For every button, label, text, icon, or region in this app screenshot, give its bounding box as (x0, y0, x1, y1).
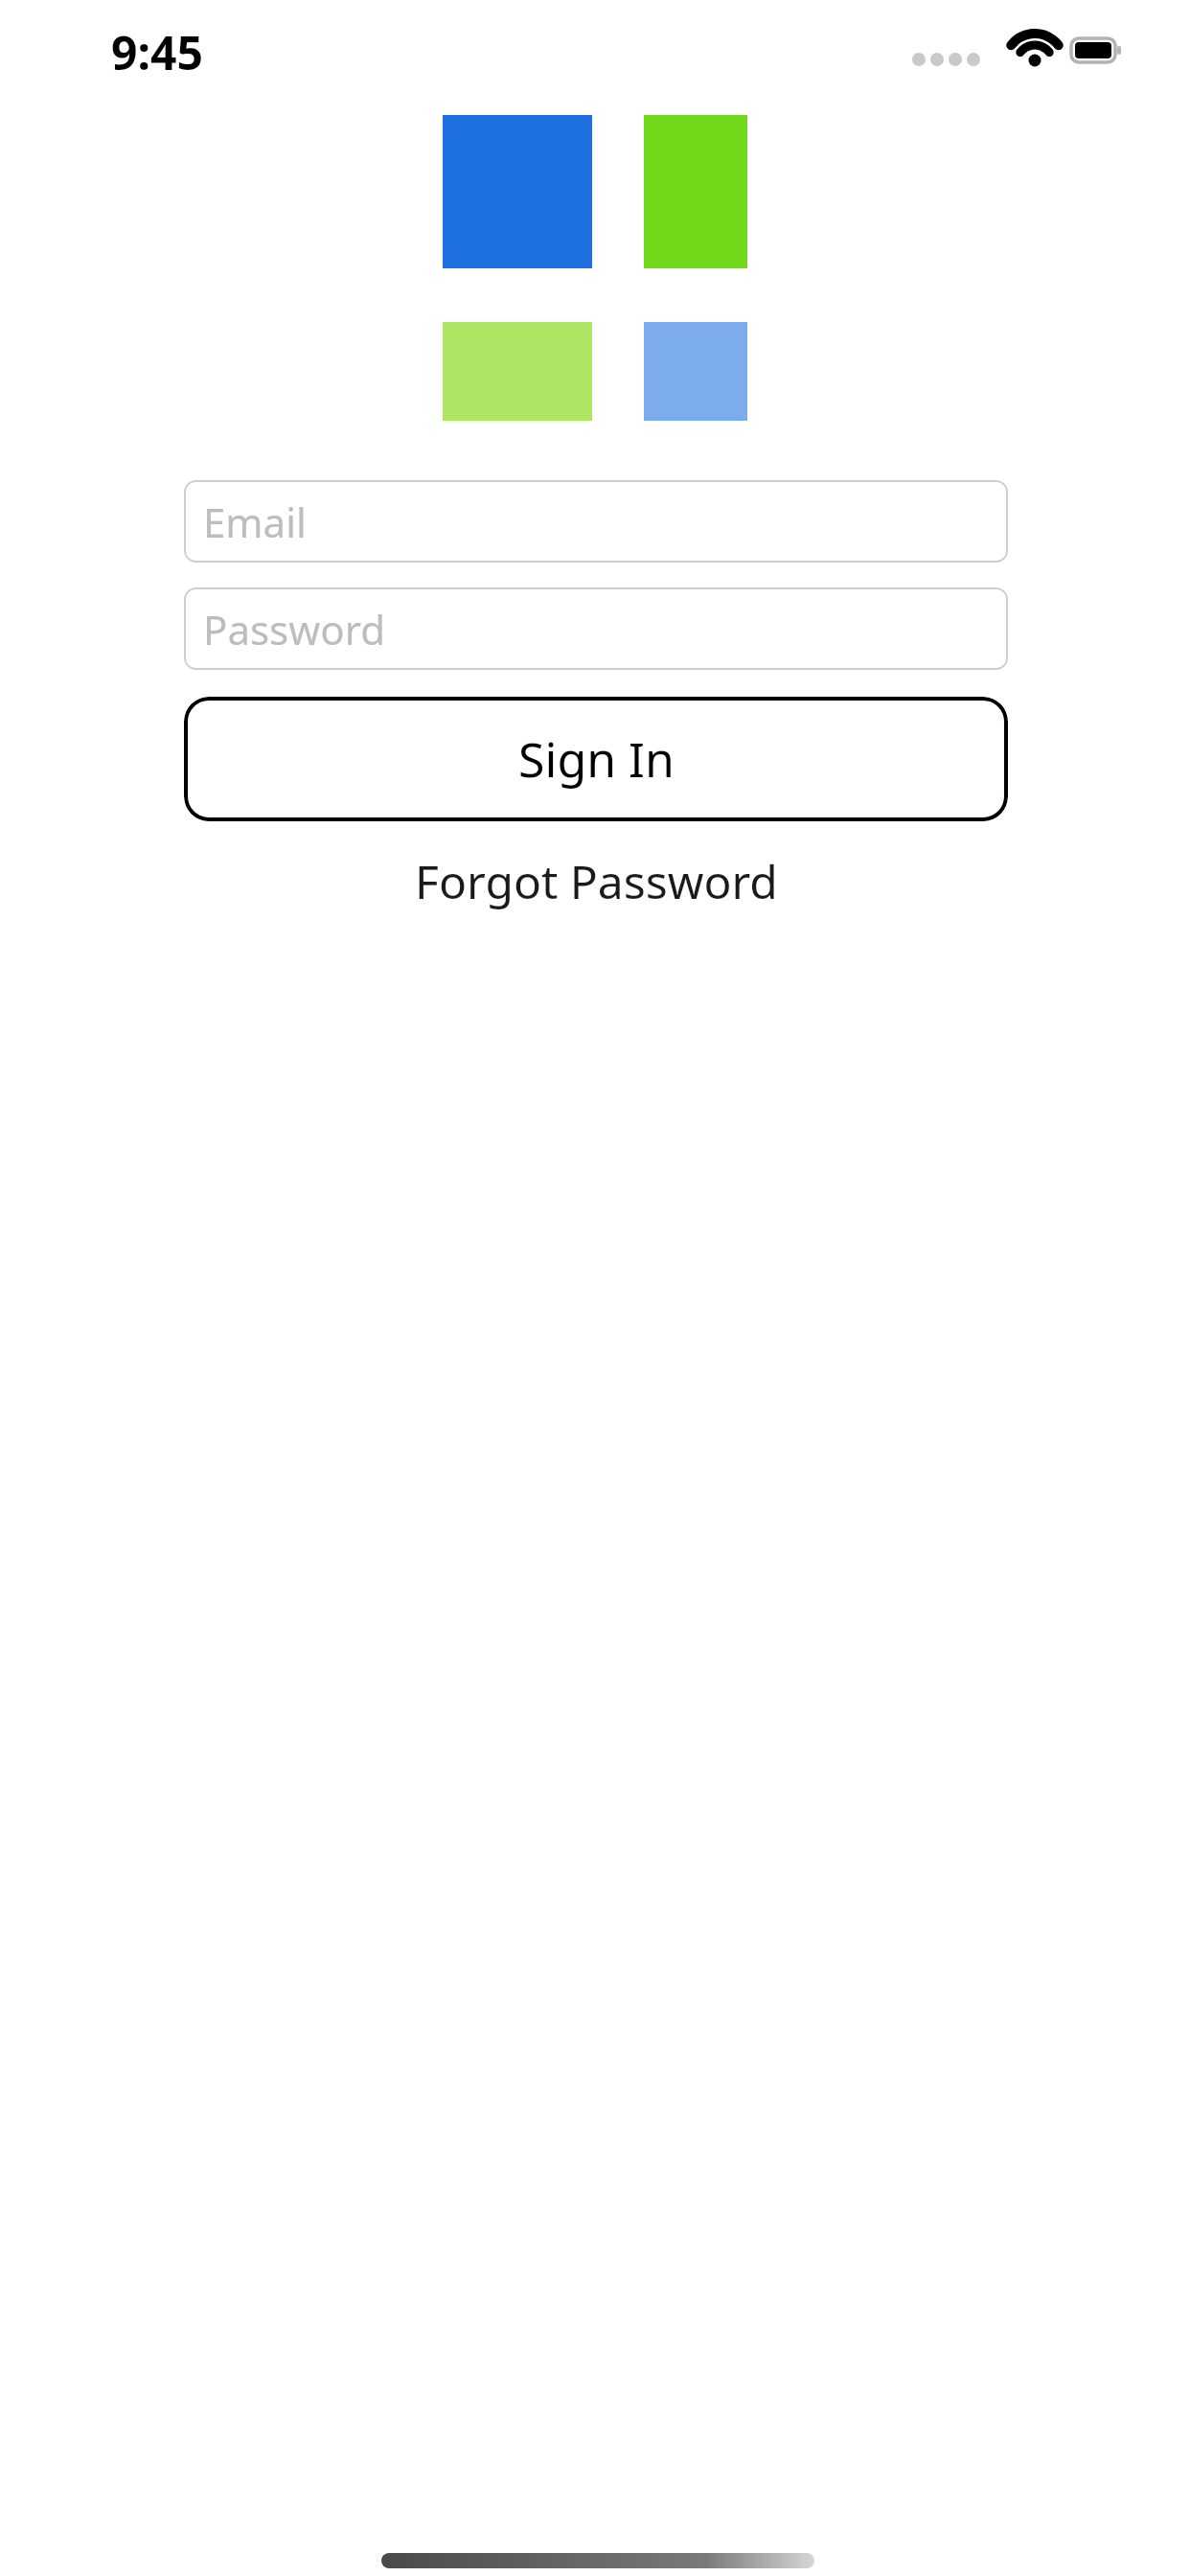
staticText: 9:45 (111, 21, 203, 83)
staticText: Forgot Password (415, 850, 778, 912)
button[interactable]: Email (184, 480, 1008, 563)
staticText: Email (203, 494, 307, 549)
button[interactable]: Password (184, 587, 1008, 670)
staticText: Password (203, 602, 385, 656)
staticText: Sign In (518, 726, 675, 792)
button[interactable]: Sign In (184, 697, 1008, 821)
button[interactable]: Forgot Password (184, 843, 1008, 918)
